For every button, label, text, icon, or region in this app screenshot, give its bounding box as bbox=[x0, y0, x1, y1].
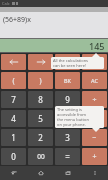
button[interactable]: ÷ bbox=[82, 91, 107, 108]
staticText: 1 bbox=[11, 132, 16, 143]
staticText: 5 bbox=[38, 113, 43, 124]
button[interactable]: 8 bbox=[28, 91, 53, 108]
staticText: 4 bbox=[11, 113, 16, 124]
button[interactable]: ( bbox=[1, 72, 26, 89]
staticText: ) bbox=[39, 76, 42, 86]
staticText: + bbox=[92, 152, 97, 162]
button[interactable]: 2 bbox=[28, 129, 53, 146]
button[interactable]: Menu bbox=[81, 166, 108, 180]
staticText: BK bbox=[64, 77, 71, 84]
staticText: 145 bbox=[89, 40, 105, 52]
staticText: 8 bbox=[38, 94, 43, 105]
staticText: ÷ bbox=[92, 95, 97, 105]
button[interactable]: = bbox=[55, 148, 80, 165]
button[interactable]: 4 bbox=[1, 110, 26, 127]
staticText: (56+89)x bbox=[3, 15, 31, 25]
button[interactable]: BK bbox=[55, 72, 80, 89]
button[interactable]: 7 bbox=[1, 91, 26, 108]
staticText: AC bbox=[91, 77, 98, 84]
staticText: − bbox=[92, 133, 97, 143]
button[interactable]: AC bbox=[82, 72, 107, 89]
button[interactable] bbox=[1, 54, 26, 70]
button[interactable]: 3 bbox=[55, 129, 80, 146]
button[interactable]: 0 bbox=[1, 148, 26, 165]
staticText: 9 bbox=[65, 94, 70, 105]
button[interactable]: Home bbox=[27, 166, 54, 180]
staticText: 7 bbox=[11, 94, 16, 105]
button[interactable]: 00 bbox=[28, 148, 53, 165]
button[interactable]: Back bbox=[0, 166, 27, 180]
staticText: 6 bbox=[65, 113, 70, 124]
staticText: All the calculations can be seen here! bbox=[53, 58, 89, 68]
button[interactable]: − bbox=[82, 129, 107, 146]
button[interactable]: × bbox=[82, 110, 107, 127]
button[interactable] bbox=[28, 54, 53, 70]
button[interactable]: ) bbox=[28, 72, 53, 89]
staticText: 0 bbox=[11, 151, 16, 162]
staticText: 00 bbox=[37, 152, 45, 161]
staticText: The setting is accessible from the menu … bbox=[57, 107, 89, 127]
staticText: = bbox=[65, 151, 70, 162]
button[interactable]: Recents bbox=[54, 166, 81, 180]
button[interactable]: 6 bbox=[55, 110, 80, 127]
button[interactable]: + bbox=[82, 148, 107, 165]
button[interactable]: 1 bbox=[1, 129, 26, 146]
button[interactable]: 9 bbox=[55, 91, 80, 108]
staticText: 2 bbox=[38, 132, 43, 143]
button[interactable]: 5 bbox=[28, 110, 53, 127]
staticText: ( bbox=[12, 76, 15, 86]
button[interactable]: . bbox=[82, 54, 107, 70]
staticText: +/- bbox=[64, 59, 71, 66]
button[interactable]: +/- bbox=[55, 54, 80, 70]
staticText: 3 bbox=[65, 132, 70, 143]
staticText: Calc bbox=[2, 1, 10, 6]
